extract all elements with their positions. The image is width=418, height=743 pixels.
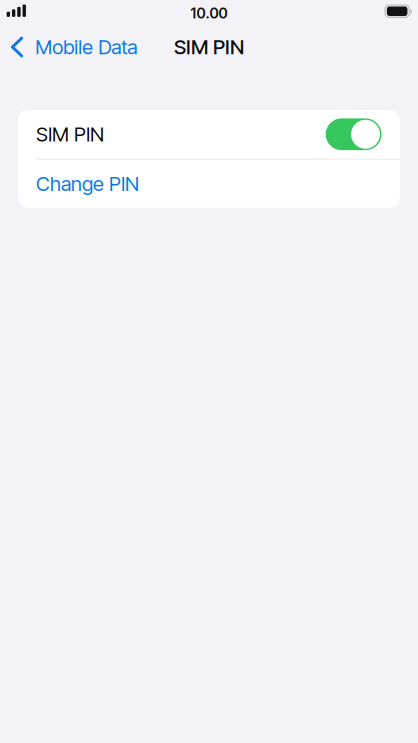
staticText: Mobile Data (35, 35, 137, 59)
staticText: SIM PIN (36, 122, 104, 146)
button[interactable]: Back to Mobile Data (0, 25, 147, 69)
button[interactable]: SIM PIN (326, 118, 381, 150)
staticText: SIM PIN (174, 35, 244, 59)
button[interactable]: Change PIN (18, 160, 400, 208)
staticText: Change PIN (36, 172, 139, 196)
staticText: 10.00 (190, 4, 227, 22)
